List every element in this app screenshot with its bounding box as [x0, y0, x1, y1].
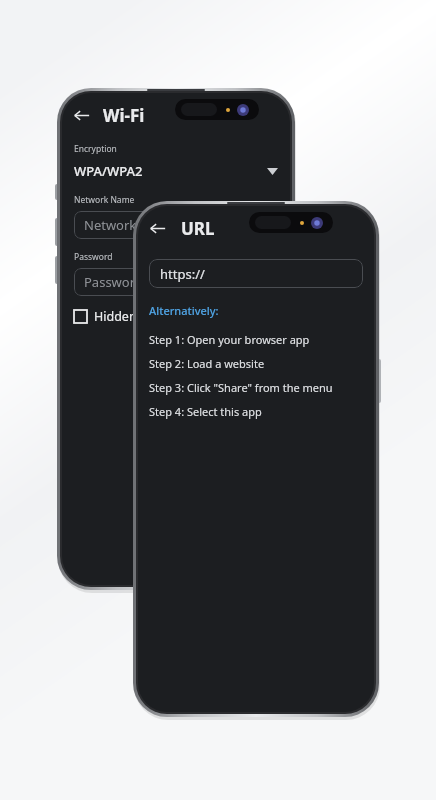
button[interactable]: WPA/WPA2	[74, 162, 278, 180]
staticText: Step 1: Open your browser app	[149, 332, 310, 347]
staticText: Network Name	[74, 194, 135, 206]
button[interactable]: Network Name	[74, 211, 278, 239]
button[interactable]: https://	[149, 259, 363, 288]
staticText: Password	[74, 251, 113, 263]
staticText: Step 2: Load a website	[149, 356, 265, 371]
staticText: Step 3: Click "Share" from the menu	[149, 380, 333, 395]
staticText: URL	[181, 217, 215, 240]
staticText: WPA/WPA2	[74, 162, 143, 180]
button[interactable]: Hidden	[74, 308, 137, 325]
staticText: Wi-Fi	[103, 104, 145, 127]
staticText: https://	[160, 265, 205, 283]
button[interactable]: Back	[144, 215, 171, 242]
staticText: Network Name	[84, 216, 177, 234]
staticText: Hidden	[94, 308, 137, 325]
button[interactable]: Back	[68, 102, 95, 129]
staticText: Step 4: Select this app	[149, 404, 262, 419]
staticText: Alternatively:	[149, 303, 219, 318]
button[interactable]: Password	[74, 268, 278, 296]
staticText: Encryption	[74, 143, 117, 155]
staticText: Password	[84, 273, 143, 291]
